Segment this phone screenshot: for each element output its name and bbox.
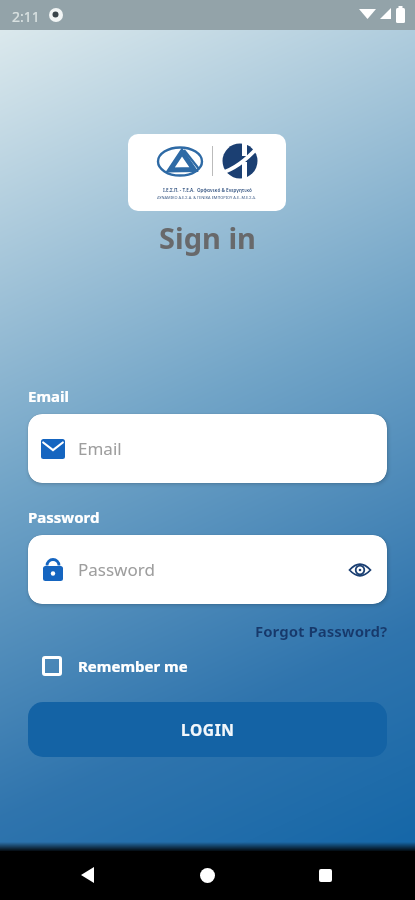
button[interactable]	[193, 861, 221, 889]
button[interactable]: Forgot Password?	[255, 621, 388, 641]
staticText: Sign in	[0, 218, 415, 257]
button[interactable]	[73, 861, 101, 889]
staticText: Remember me	[78, 656, 188, 676]
button[interactable]: Remember me	[42, 656, 188, 676]
staticText: ΔΥΝΑΜΙΚΟ Α.Ε.Σ.Α. & ΓΕΝΙΚΑ ΕΜΠΟΡΙΟΥ Α.Ε.…	[157, 195, 257, 200]
staticText: Ι.Ε.Σ.Π. - Τ.Ε.Α. Ορφανικό & Ενεργητικό	[163, 187, 252, 193]
button[interactable]: Password	[28, 535, 387, 604]
staticText: Email	[28, 386, 69, 406]
staticText: Password	[28, 507, 100, 527]
button[interactable]: Email	[28, 414, 387, 483]
staticText: Email	[78, 437, 122, 460]
button[interactable]	[347, 557, 373, 583]
staticText: LOGIN	[181, 719, 235, 740]
staticText: Password	[78, 558, 155, 581]
staticText: 2:11	[12, 7, 40, 26]
button[interactable]: LOGIN	[28, 702, 387, 757]
button[interactable]	[311, 861, 339, 889]
